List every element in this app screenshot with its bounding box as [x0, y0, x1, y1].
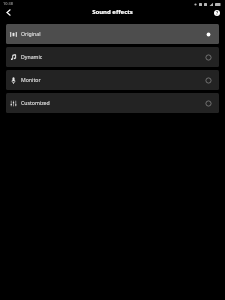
staticText: Original: [21, 30, 41, 37]
button[interactable]: Dynamic: [6, 47, 219, 67]
button[interactable]: Monitor: [6, 70, 219, 90]
button[interactable]: Original: [6, 24, 219, 44]
staticText: Monitor: [21, 76, 41, 83]
button[interactable]: Customized: [6, 93, 219, 113]
staticText: Sound effects: [92, 8, 133, 16]
staticText: ?: [216, 10, 219, 16]
staticText: Customized: [21, 99, 50, 106]
button[interactable]: Help: [211, 7, 222, 18]
staticText: 10:38: [3, 1, 13, 6]
button[interactable]: Back: [1, 5, 16, 20]
staticText: Dynamic: [21, 53, 43, 60]
